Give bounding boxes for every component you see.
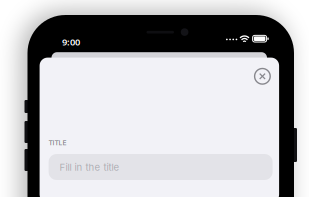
button[interactable]: Close [250, 64, 274, 88]
staticText: Fill in the title [60, 161, 120, 173]
staticText: TITLE [49, 139, 67, 147]
staticText: 9:00 [62, 35, 80, 48]
button[interactable]: Fill in the title [49, 154, 273, 180]
